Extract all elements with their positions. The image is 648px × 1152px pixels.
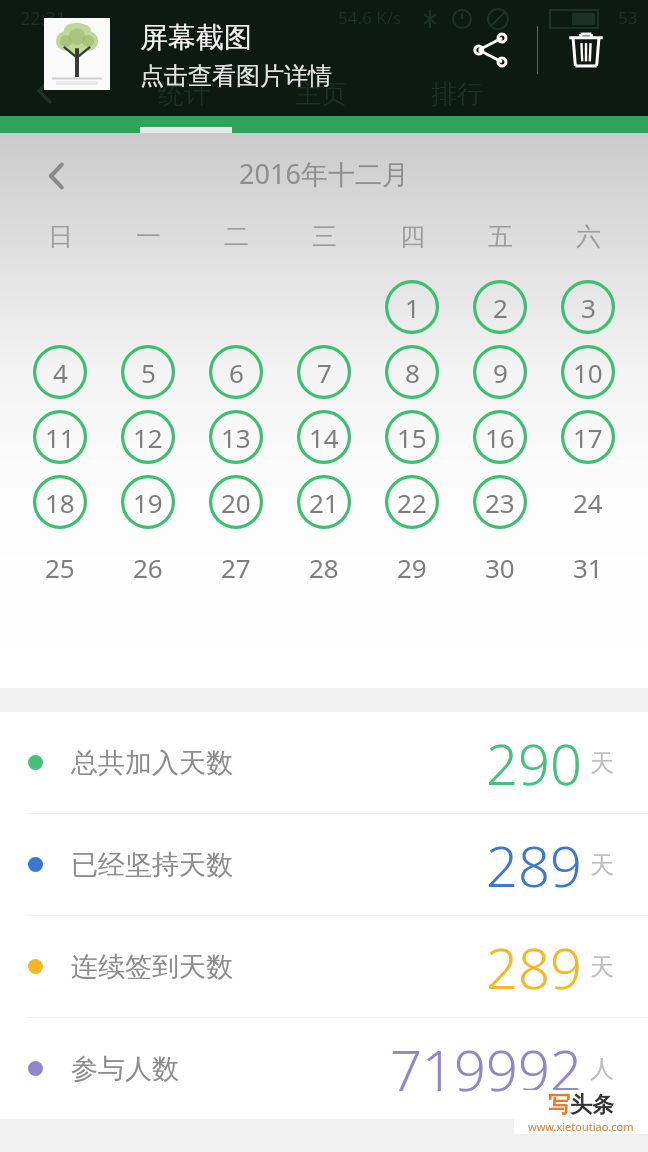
button[interactable]: 4 xyxy=(31,343,89,401)
staticText: 8 xyxy=(405,355,420,390)
button[interactable]: Delete xyxy=(558,22,614,78)
button[interactable]: 20 xyxy=(207,473,265,531)
staticText: 289 xyxy=(486,929,582,1005)
staticText: 写 xyxy=(548,1091,570,1119)
button[interactable]: 连续签到天数 xyxy=(0,916,648,1017)
button[interactable]: 参与人数 xyxy=(0,1018,648,1119)
staticText: 21 xyxy=(309,485,339,520)
button[interactable]: 12 xyxy=(119,408,177,466)
staticText: 二 xyxy=(224,221,249,252)
staticText: 289 xyxy=(486,827,582,903)
staticText: 4 xyxy=(53,355,68,390)
button[interactable]: 16 xyxy=(471,408,529,466)
staticText: 三 xyxy=(312,221,337,252)
staticText: 2 xyxy=(493,290,508,325)
staticText: 53 xyxy=(618,6,638,29)
staticText: 天 xyxy=(590,952,614,982)
staticText: 290 xyxy=(486,725,582,801)
button[interactable]: 19 xyxy=(119,473,177,531)
button[interactable]: 1 xyxy=(383,278,441,336)
staticText: 13 xyxy=(221,420,251,455)
staticText: 30 xyxy=(485,550,515,585)
button[interactable]: 18 xyxy=(31,473,89,531)
staticText: 天 xyxy=(590,850,614,880)
staticText: 29 xyxy=(397,550,427,585)
button[interactable]: 24 xyxy=(559,473,617,531)
button[interactable]: 2 xyxy=(471,278,529,336)
button[interactable]: 3 xyxy=(559,278,617,336)
staticText: 排行 xyxy=(431,78,483,111)
staticText: 19 xyxy=(133,485,163,520)
button[interactable]: 8 xyxy=(383,343,441,401)
button[interactable]: Share xyxy=(462,22,518,78)
staticText: 15 xyxy=(397,420,427,455)
staticText: 已经坚持天数 xyxy=(71,848,233,882)
button[interactable]: 6 xyxy=(207,343,265,401)
staticText: 五 xyxy=(488,221,513,252)
button[interactable]: 30 xyxy=(471,538,529,596)
staticText: 28 xyxy=(309,550,339,585)
button[interactable]: 28 xyxy=(295,538,353,596)
staticText: 一 xyxy=(136,221,161,252)
button[interactable]: 10 xyxy=(559,343,617,401)
staticText: 16 xyxy=(485,420,515,455)
staticText: 22:31 xyxy=(20,6,67,31)
staticText: 头条 xyxy=(570,1091,614,1119)
staticText: 六 xyxy=(576,221,601,252)
staticText: 四 xyxy=(400,221,425,252)
button[interactable]: 7 xyxy=(295,343,353,401)
staticText: 总共加入天数 xyxy=(71,746,233,780)
button[interactable]: 9 xyxy=(471,343,529,401)
staticText: www.xietoutiao.com xyxy=(528,1119,634,1134)
staticText: 24 xyxy=(573,485,603,520)
button[interactable]: 17 xyxy=(559,408,617,466)
staticText: 统计 xyxy=(158,78,210,111)
staticText: 主页 xyxy=(295,78,347,111)
button[interactable]: Previous month xyxy=(30,149,84,203)
button[interactable]: 15 xyxy=(383,408,441,466)
button[interactable]: 总共加入天数 xyxy=(0,712,648,813)
staticText: 点击查看图片详情 xyxy=(140,61,332,91)
button[interactable]: 23 xyxy=(471,473,529,531)
staticText: 7 xyxy=(317,355,332,390)
button[interactable]: 31 xyxy=(559,538,617,596)
staticText: 719992 xyxy=(390,1031,582,1107)
staticText: 9 xyxy=(493,355,508,390)
staticText: 人 xyxy=(590,1054,614,1084)
staticText: 54.6 K/s xyxy=(338,6,402,29)
staticText: 5 xyxy=(141,355,156,390)
button[interactable]: 25 xyxy=(31,538,89,596)
staticText: 日 xyxy=(48,221,73,252)
staticText: 10 xyxy=(573,355,603,390)
staticText: 25 xyxy=(45,550,75,585)
staticText: 26 xyxy=(133,550,163,585)
staticText: 参与人数 xyxy=(71,1052,179,1086)
button[interactable]: 已经坚持天数 xyxy=(0,814,648,915)
staticText: 18 xyxy=(45,485,75,520)
staticText: 20 xyxy=(221,485,251,520)
staticText: 17 xyxy=(573,420,603,455)
button[interactable]: 14 xyxy=(295,408,353,466)
button[interactable]: 5 xyxy=(119,343,177,401)
button[interactable]: 13 xyxy=(207,408,265,466)
staticText: 14 xyxy=(309,420,339,455)
staticText: 23 xyxy=(485,485,515,520)
staticText: 22 xyxy=(397,485,427,520)
button[interactable]: 11 xyxy=(31,408,89,466)
staticText: 6 xyxy=(229,355,244,390)
button[interactable]: 27 xyxy=(207,538,265,596)
staticText: 天 xyxy=(590,748,614,778)
button[interactable]: 29 xyxy=(383,538,441,596)
button[interactable]: 22 xyxy=(383,473,441,531)
staticText: 1 xyxy=(405,290,420,325)
button[interactable]: 26 xyxy=(119,538,177,596)
staticText: 屏幕截图 xyxy=(140,20,252,55)
staticText: 2016年十二月 xyxy=(0,155,648,192)
staticText: 27 xyxy=(221,550,251,585)
staticText: 11 xyxy=(45,420,75,455)
staticText: 连续签到天数 xyxy=(71,950,233,984)
button[interactable]: 21 xyxy=(295,473,353,531)
staticText: 3 xyxy=(581,290,596,325)
staticText: 31 xyxy=(573,550,603,585)
staticText: 12 xyxy=(133,420,163,455)
